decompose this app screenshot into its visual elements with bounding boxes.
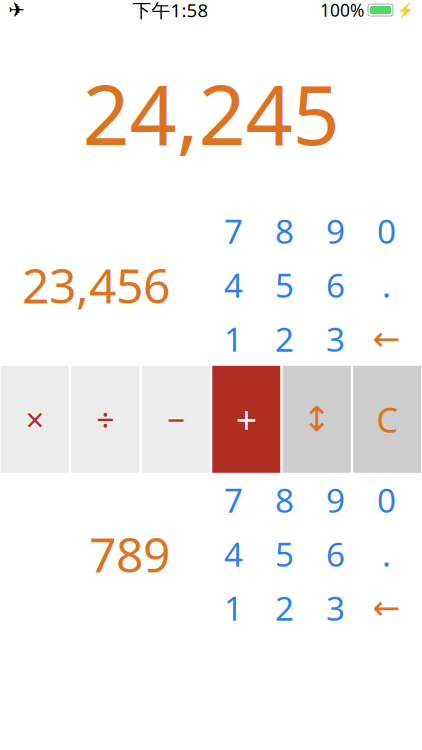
staticText: 3 xyxy=(326,317,345,361)
button[interactable]: 6 xyxy=(310,258,361,312)
staticText: 6 xyxy=(326,532,345,576)
staticText: 789 xyxy=(89,522,170,586)
staticText: 7 xyxy=(224,478,243,522)
staticText: ↕ xyxy=(302,400,331,439)
button[interactable]: 8 xyxy=(259,204,310,258)
button[interactable]: ← xyxy=(361,581,412,635)
button[interactable]: 0 xyxy=(361,473,412,527)
button[interactable]: ← xyxy=(361,312,412,366)
button[interactable]: Subtract xyxy=(142,366,210,473)
staticText: 2 xyxy=(275,586,294,630)
button[interactable]: 8 xyxy=(259,473,310,527)
button[interactable]: Add xyxy=(212,366,280,473)
staticText: 3 xyxy=(326,586,345,630)
button[interactable]: 5 xyxy=(259,527,310,581)
button[interactable]: 0 xyxy=(361,204,412,258)
staticText: ⚡ xyxy=(397,2,414,18)
button[interactable]: Multiply xyxy=(1,366,69,473)
staticText: ÷ xyxy=(96,398,114,440)
button[interactable]: 1 xyxy=(208,581,259,635)
staticText: 1 xyxy=(224,586,243,630)
button[interactable]: Clear xyxy=(353,366,421,473)
button[interactable]: 2 xyxy=(259,581,310,635)
button[interactable]: Swap operands xyxy=(283,366,351,473)
staticText: 100% xyxy=(320,0,364,21)
staticText: 8 xyxy=(275,478,294,522)
staticText: 9 xyxy=(326,478,345,522)
staticText: × xyxy=(26,398,44,440)
button[interactable]: 6 xyxy=(310,527,361,581)
button[interactable]: 1 xyxy=(208,312,259,366)
staticText: C xyxy=(376,396,398,442)
staticText: . xyxy=(382,263,391,307)
button[interactable]: . xyxy=(361,258,412,312)
staticText: 1 xyxy=(224,317,243,361)
button[interactable]: 9 xyxy=(310,204,361,258)
staticText: 24,245 xyxy=(82,58,339,168)
button[interactable]: 5 xyxy=(259,258,310,312)
button[interactable]: Divide xyxy=(71,366,139,473)
staticText: ← xyxy=(372,320,400,358)
button[interactable]: 4 xyxy=(208,527,259,581)
staticText: . xyxy=(382,532,391,576)
staticText: 4 xyxy=(224,263,243,307)
button[interactable]: . xyxy=(361,527,412,581)
staticText: 下午1:58 xyxy=(132,0,208,22)
staticText: ✈ xyxy=(8,0,25,21)
staticText: 4 xyxy=(224,532,243,576)
staticText: 0 xyxy=(377,478,396,522)
staticText: + xyxy=(236,394,257,444)
staticText: 5 xyxy=(275,263,294,307)
button[interactable]: 9 xyxy=(310,473,361,527)
button[interactable]: 3 xyxy=(310,312,361,366)
staticText: 7 xyxy=(224,209,243,253)
staticText: 0 xyxy=(377,209,396,253)
staticText: 23,456 xyxy=(22,253,170,317)
button[interactable]: 3 xyxy=(310,581,361,635)
staticText: 2 xyxy=(275,317,294,361)
staticText: 9 xyxy=(326,209,345,253)
staticText: 6 xyxy=(326,263,345,307)
staticText: − xyxy=(167,398,185,440)
button[interactable]: 7 xyxy=(208,204,259,258)
button[interactable]: 2 xyxy=(259,312,310,366)
button[interactable]: 7 xyxy=(208,473,259,527)
staticText: 8 xyxy=(275,209,294,253)
button[interactable]: 4 xyxy=(208,258,259,312)
staticText: 5 xyxy=(275,532,294,576)
staticText: ← xyxy=(372,589,400,627)
